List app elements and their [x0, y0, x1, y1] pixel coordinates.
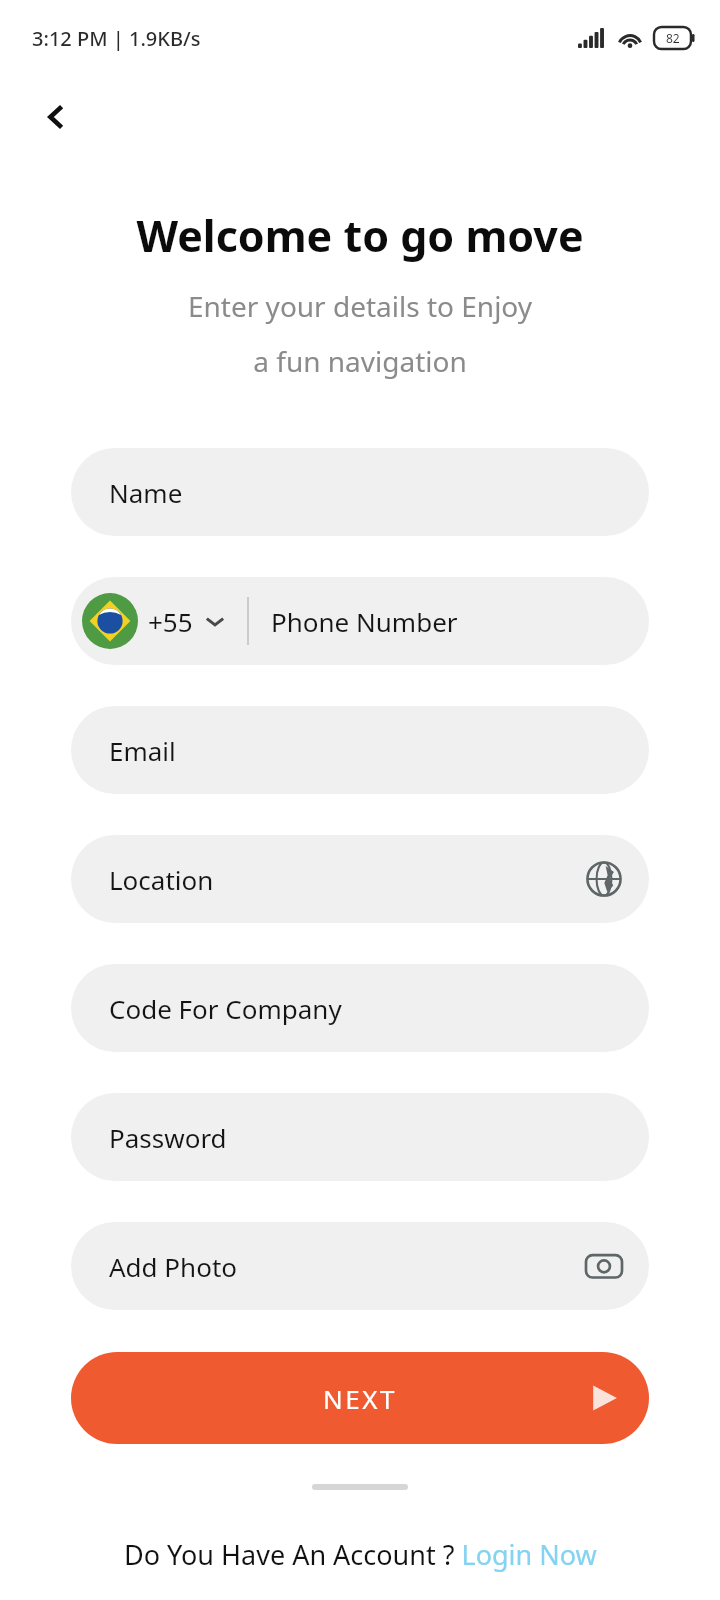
- staticText: 82: [666, 30, 680, 46]
- button[interactable]: Add Photo: [71, 1222, 649, 1310]
- staticText: Enter your details to Enjoy a fun naviga…: [0, 287, 720, 380]
- button[interactable]: Back: [23, 84, 89, 150]
- button[interactable]: Location: [71, 835, 649, 923]
- button[interactable]: Choose location: [581, 856, 627, 902]
- button[interactable]: Add photo: [581, 1243, 627, 1289]
- staticText: Password: [109, 1120, 227, 1155]
- staticText: Email: [109, 733, 176, 768]
- staticText: NEXT: [323, 1381, 397, 1416]
- staticText: Location: [109, 862, 214, 897]
- staticText: Add Photo: [109, 1249, 237, 1284]
- staticText: Do You Have An Account ? Login Now: [124, 1536, 597, 1573]
- staticText: Name: [109, 475, 183, 510]
- button[interactable]: NEXT: [71, 1352, 649, 1444]
- button[interactable]: +55: [71, 577, 649, 665]
- staticText: 3:12 PM | 1.9KB/s: [32, 25, 201, 52]
- button[interactable]: Code For Company: [71, 964, 649, 1052]
- button[interactable]: Password: [71, 1093, 649, 1181]
- button[interactable]: Name: [71, 448, 649, 536]
- button[interactable]: Email: [71, 706, 649, 794]
- staticText: Welcome to go move: [0, 206, 720, 265]
- staticText: Code For Company: [109, 991, 342, 1026]
- button[interactable]: Do You Have An Account ? Login Now: [0, 1536, 720, 1573]
- staticText: +55: [148, 604, 193, 639]
- staticText: Phone Number: [271, 604, 458, 639]
